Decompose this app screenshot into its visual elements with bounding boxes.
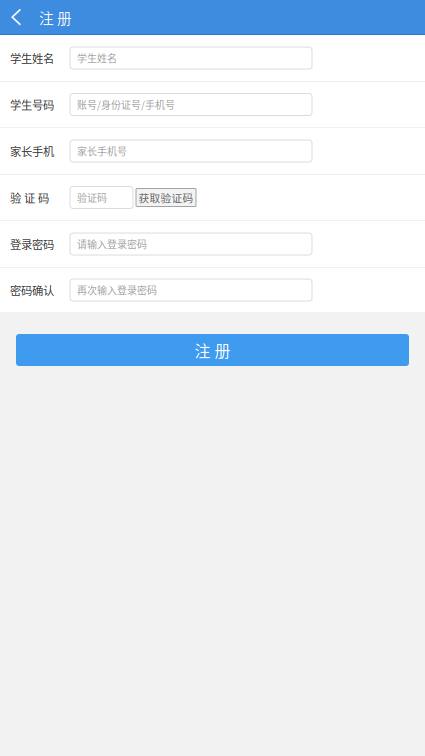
button[interactable]: 账号/身份证号/手机号 [70, 93, 312, 115]
staticText: 学生号码 [10, 96, 54, 113]
staticText: 再次输入登录密码 [77, 283, 157, 297]
staticText: 获取验证码 [138, 190, 193, 205]
staticText: 学生姓名 [77, 51, 117, 65]
button[interactable]: Back [0, 0, 33, 35]
button[interactable]: 学生姓名 [70, 47, 312, 69]
staticText: 登录密码 [10, 236, 54, 252]
staticText: 验证码 [77, 190, 107, 205]
staticText: 家长手机 [10, 143, 54, 159]
button[interactable]: 获取验证码 [136, 188, 196, 206]
button[interactable]: 注 册 [16, 334, 409, 366]
staticText: 账号/身份证号/手机号 [77, 97, 175, 112]
staticText: 注 册 [39, 7, 72, 28]
staticText: 请输入登录密码 [77, 237, 147, 251]
staticText: 密码确认 [10, 282, 54, 298]
staticText: 学生姓名 [10, 50, 54, 66]
button[interactable]: 验证码 [70, 186, 133, 208]
staticText: 注 册 [194, 338, 230, 362]
button[interactable]: 请输入登录密码 [70, 233, 312, 255]
button[interactable]: 家长手机号 [70, 140, 312, 162]
button[interactable]: 再次输入登录密码 [70, 279, 312, 301]
staticText: 验 证 码 [10, 189, 49, 206]
staticText: 家长手机号 [77, 144, 127, 158]
